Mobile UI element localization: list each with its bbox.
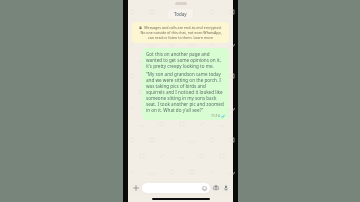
- staticText: Today: [174, 11, 187, 17]
- staticText: 11:14: [211, 113, 220, 118]
- button[interactable]: Emoji: [142, 183, 210, 193]
- staticText: "My son and grandson came today and we w…: [146, 71, 225, 113]
- button[interactable]: Got this on another page and wanted to g…: [142, 48, 229, 120]
- button[interactable]: Messages and calls are end-to-end encryp…: [132, 22, 229, 43]
- staticText: Got this on another page and wanted to g…: [146, 51, 225, 69]
- button[interactable]: Camera: [212, 184, 220, 192]
- staticText: can read or listen to them. Learn more: [148, 35, 213, 40]
- button[interactable]: Voice message: [222, 184, 230, 192]
- button[interactable]: Emoji: [201, 185, 207, 191]
- button[interactable]: Today: [168, 9, 193, 19]
- button[interactable]: Attach: [131, 183, 141, 193]
- staticText: Messages and calls are end-to-end encryp…: [144, 25, 222, 30]
- staticText: No one outside of this chat, not even Wh…: [140, 30, 222, 35]
